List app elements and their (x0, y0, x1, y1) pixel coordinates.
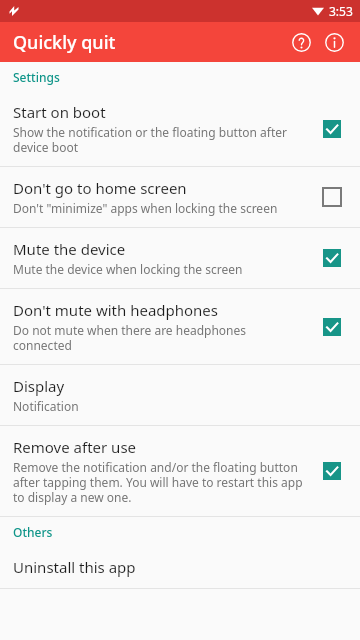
staticText: Uninstall this app (13, 557, 136, 577)
button[interactable]: Checked (317, 243, 347, 273)
staticText: 3:53 (329, 3, 353, 19)
staticText: Settings (13, 69, 60, 85)
button[interactable]: Start on boot (0, 91, 360, 166)
staticText: Don't "minimize" apps when locking the s… (13, 200, 278, 216)
button[interactable]: Help (285, 26, 317, 58)
staticText: Show the notification or the floating bu… (13, 124, 307, 155)
button[interactable]: Checked (317, 456, 347, 486)
button[interactable]: Checked (317, 312, 347, 342)
button[interactable]: Display (0, 365, 360, 425)
staticText: Remove after use (13, 437, 137, 457)
button[interactable]: Checked (317, 114, 347, 144)
staticText: Others (13, 524, 53, 540)
staticText: Remove the notification and/or the float… (13, 459, 307, 505)
button[interactable]: Mute the device (0, 228, 360, 288)
button[interactable]: Don't go to home screen (0, 167, 360, 227)
staticText: Don't mute with headphones (13, 300, 219, 320)
button[interactable]: Unchecked (317, 182, 347, 212)
button[interactable]: Don't mute with headphones (0, 289, 360, 364)
staticText: Notification (13, 398, 79, 414)
staticText: Quickly quit (13, 30, 116, 55)
button[interactable]: Uninstall this app (0, 546, 360, 588)
staticText: Don't go to home screen (13, 178, 187, 198)
button[interactable]: About (318, 26, 350, 58)
staticText: Start on boot (13, 102, 106, 122)
button[interactable]: Remove after use (0, 426, 360, 516)
staticText: Mute the device (13, 239, 126, 259)
staticText: Do not mute when there are headphones co… (13, 322, 307, 353)
staticText: Display (13, 376, 65, 396)
staticText: Mute the device when locking the screen (13, 261, 243, 277)
